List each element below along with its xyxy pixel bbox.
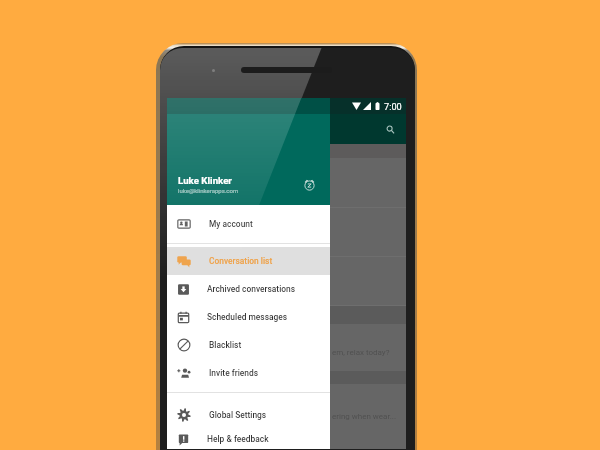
button[interactable]: ering when wear... — [167, 384, 406, 431]
staticText: 7:00 — [384, 101, 402, 112]
button[interactable]: em, relax today? — [167, 324, 406, 371]
button[interactable] — [167, 305, 406, 324]
button[interactable]: Snooze notifications — [303, 178, 316, 191]
button[interactable] — [167, 144, 406, 158]
staticText: Luke Klinker — [178, 175, 232, 186]
button[interactable]: Conversation list — [167, 247, 330, 275]
button[interactable]: Archived conversations — [167, 275, 330, 303]
button[interactable]: Search — [383, 122, 398, 137]
button[interactable] — [167, 371, 406, 384]
button[interactable] — [167, 158, 406, 207]
staticText: Help & feedback — [207, 434, 269, 444]
staticText: Global Settings — [209, 410, 267, 420]
staticText: Archived conversations — [207, 284, 296, 294]
staticText: My account — [209, 219, 253, 229]
staticText: em, relax today? — [332, 348, 390, 357]
staticText: ering when wear... — [332, 412, 397, 421]
staticText: Scheduled messages — [207, 312, 288, 322]
button[interactable] — [167, 207, 406, 256]
button[interactable] — [167, 431, 406, 449]
staticText: Invite friends — [209, 368, 259, 378]
button[interactable] — [167, 256, 406, 305]
button[interactable]: My account — [167, 210, 330, 238]
button[interactable]: Blacklist — [167, 331, 330, 359]
button[interactable]: Help & feedback — [167, 429, 330, 449]
staticText: Conversation list — [209, 256, 273, 266]
button[interactable]: Scheduled messages — [167, 303, 330, 331]
staticText: Blacklist — [209, 340, 242, 350]
staticText: luke@klinkerapps.com — [178, 187, 239, 194]
button[interactable]: Invite friends — [167, 359, 330, 387]
button[interactable]: Global Settings — [167, 401, 330, 429]
